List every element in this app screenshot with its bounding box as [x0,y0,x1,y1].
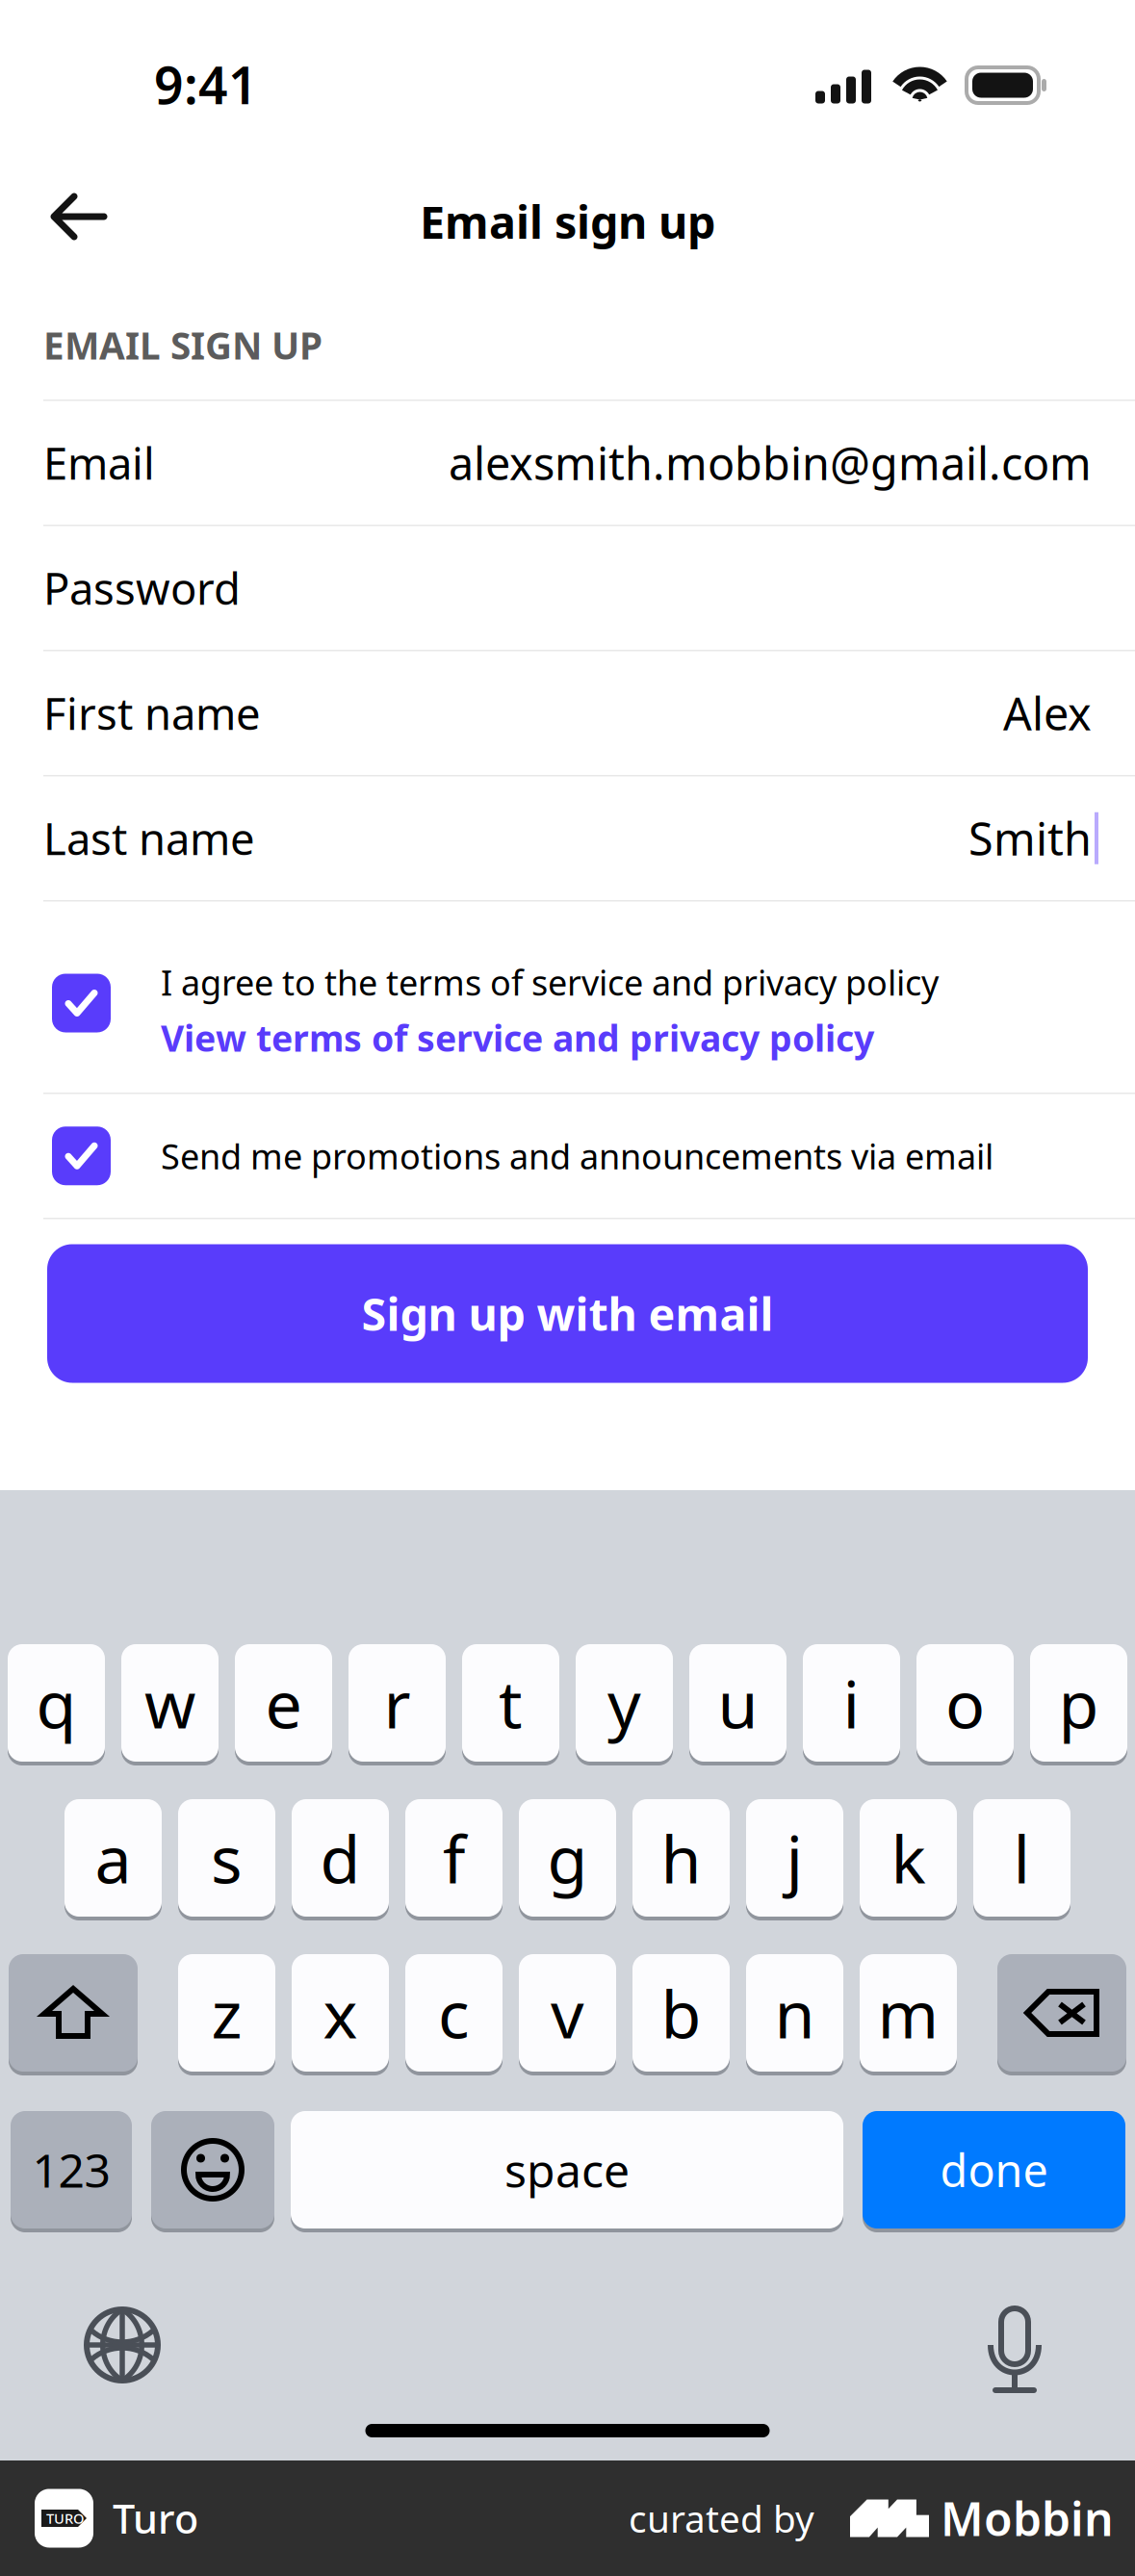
staticText: Turo [113,2492,198,2545]
staticText: n [774,1969,815,2056]
staticText: y [607,1659,641,1746]
staticText: w [144,1659,195,1746]
staticText: done [940,2140,1048,2200]
staticText: a [95,1814,131,1901]
button[interactable]: l [973,1799,1071,1920]
button[interactable]: Back [0,168,131,266]
staticText: EMAIL SIGN UP [43,320,322,370]
staticText: First name [43,684,261,742]
button[interactable]: h [632,1799,730,1920]
button[interactable]: w [121,1644,219,1765]
button[interactable]: done [863,2111,1125,2232]
button[interactable]: Send me promotions and announcements via… [0,1094,1135,1219]
staticText: d [320,1814,361,1901]
staticText: Mobbin [941,2488,1114,2549]
button[interactable]: b [632,1954,730,2075]
button[interactable]: v [519,1954,616,2075]
staticText: o [945,1659,985,1746]
button[interactable]: Sign up with email [0,1244,1135,1383]
button[interactable]: g [519,1799,616,1920]
staticText: alexsmith.mobbin@gmail.com [449,433,1092,493]
button[interactable]: m [860,1954,957,2075]
staticText: e [265,1659,302,1746]
staticText: p [1058,1659,1099,1746]
button[interactable]: Next keyboard [84,2306,161,2383]
staticText: m [877,1969,939,2056]
button[interactable]: Dictate [988,2306,1042,2393]
button[interactable]: k [860,1799,957,1920]
staticText: t [499,1659,523,1746]
button[interactable]: d [292,1799,389,1920]
button[interactable]: s [178,1799,275,1920]
button[interactable]: e [235,1644,332,1765]
button[interactable]: o [916,1644,1014,1765]
button[interactable]: z [178,1954,275,2075]
staticText: Send me promotions and announcements via… [161,1133,993,1179]
button[interactable]: t [462,1644,559,1765]
button[interactable]: p [1030,1644,1127,1765]
staticText: j [786,1814,803,1901]
staticText: v [551,1969,584,2056]
staticText: Alex [1003,683,1092,743]
button[interactable]: Delete [997,1954,1126,2075]
button[interactable]: space [291,2111,843,2232]
staticText: x [323,1969,358,2056]
staticText: 123 [32,2139,110,2200]
staticText: Smith [968,808,1092,868]
button[interactable]: Emoji [151,2111,274,2232]
button[interactable]: 123 [11,2111,132,2232]
staticText: I agree to the terms of service and priv… [161,959,939,1005]
button[interactable]: I agree to the terms of service and priv… [0,902,1135,1094]
button[interactable]: q [8,1644,105,1765]
staticText: Last name [43,809,255,867]
staticText: space [504,2139,630,2200]
button[interactable]: Shift [9,1954,138,2075]
staticText: 9:41 [154,50,258,118]
staticText: Sign up with email [361,1284,774,1343]
staticText: z [211,1969,242,2056]
button[interactable]: a [64,1799,162,1920]
staticText: Email sign up [420,192,715,251]
staticText: s [211,1814,243,1901]
staticText: TURO [46,2509,84,2528]
staticText: q [36,1659,77,1746]
button[interactable]: c [405,1954,503,2075]
staticText: f [443,1814,465,1901]
staticText: View terms of service and privacy policy [161,1014,874,1062]
staticText: g [547,1814,588,1901]
button[interactable]: r [348,1644,446,1765]
button[interactable]: x [292,1954,389,2075]
staticText: b [661,1969,701,2056]
staticText: u [718,1659,758,1746]
staticText: r [384,1659,411,1746]
button[interactable]: j [746,1799,843,1920]
button[interactable]: u [689,1644,787,1765]
staticText: Password [43,559,241,617]
button[interactable]: y [576,1644,673,1765]
staticText: c [438,1969,470,2056]
staticText: k [891,1814,926,1901]
staticText: curated by [629,2494,814,2543]
button[interactable]: f [405,1799,503,1920]
button[interactable]: i [803,1644,900,1765]
staticText: h [661,1814,701,1901]
staticText: i [843,1659,860,1746]
staticText: l [1013,1814,1031,1901]
staticText: Email [43,434,155,492]
button[interactable]: n [746,1954,843,2075]
